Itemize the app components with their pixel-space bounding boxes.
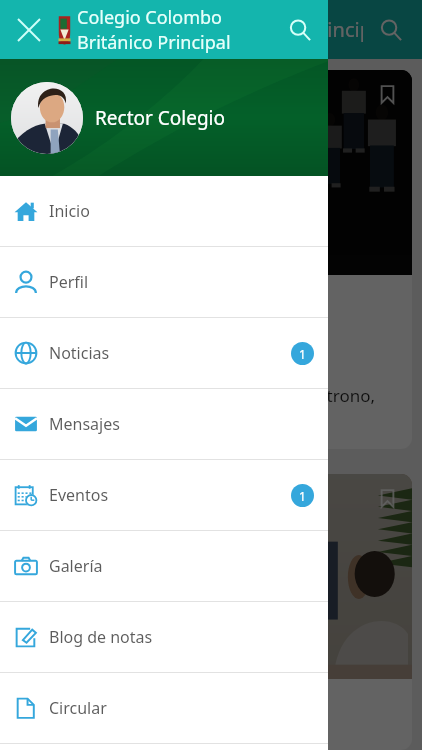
button[interactable]: Circular xyxy=(0,673,328,743)
button[interactable]: Colegio Colombo Británico xyxy=(11,70,412,449)
staticText: Perfil xyxy=(49,271,89,293)
staticText: Circular xyxy=(49,697,107,719)
staticText: 1 xyxy=(299,346,306,362)
staticText: Británico Principal xyxy=(77,30,231,55)
staticText: Se realizó la celebración del día del pa… xyxy=(25,384,376,407)
button[interactable]: Search xyxy=(272,0,328,59)
staticText: Noticias xyxy=(49,342,110,364)
staticText: Colegio Colombo Británico xyxy=(69,695,232,713)
button[interactable]: Close xyxy=(0,0,58,59)
button[interactable]: Galería xyxy=(0,531,328,601)
staticText: 1 xyxy=(299,488,306,504)
button[interactable]: Eventos xyxy=(0,460,328,530)
button[interactable]: Noticias xyxy=(0,318,328,388)
staticText: Principal xyxy=(307,16,363,43)
button[interactable]: Blog de notas xyxy=(0,602,328,672)
button[interactable]: Rector Colegio xyxy=(0,59,328,176)
button[interactable]: Mensajes xyxy=(0,389,328,459)
button[interactable]: Inicio xyxy=(0,176,328,246)
staticText: Mensajes xyxy=(49,413,120,435)
staticText: Eventos xyxy=(49,484,109,506)
staticText: Blog de notas xyxy=(49,626,153,648)
staticText: Rector Colegio xyxy=(95,105,225,131)
staticText: 15 de mayo xyxy=(69,312,135,328)
button[interactable]: Perfil xyxy=(0,247,328,317)
button[interactable]: Colegio Colombo Británico xyxy=(11,474,412,750)
staticText: Colegio Colombo xyxy=(77,5,222,30)
staticText: Galería xyxy=(49,555,103,577)
staticText: Inicio xyxy=(49,200,90,222)
button[interactable]: Search xyxy=(369,8,413,52)
